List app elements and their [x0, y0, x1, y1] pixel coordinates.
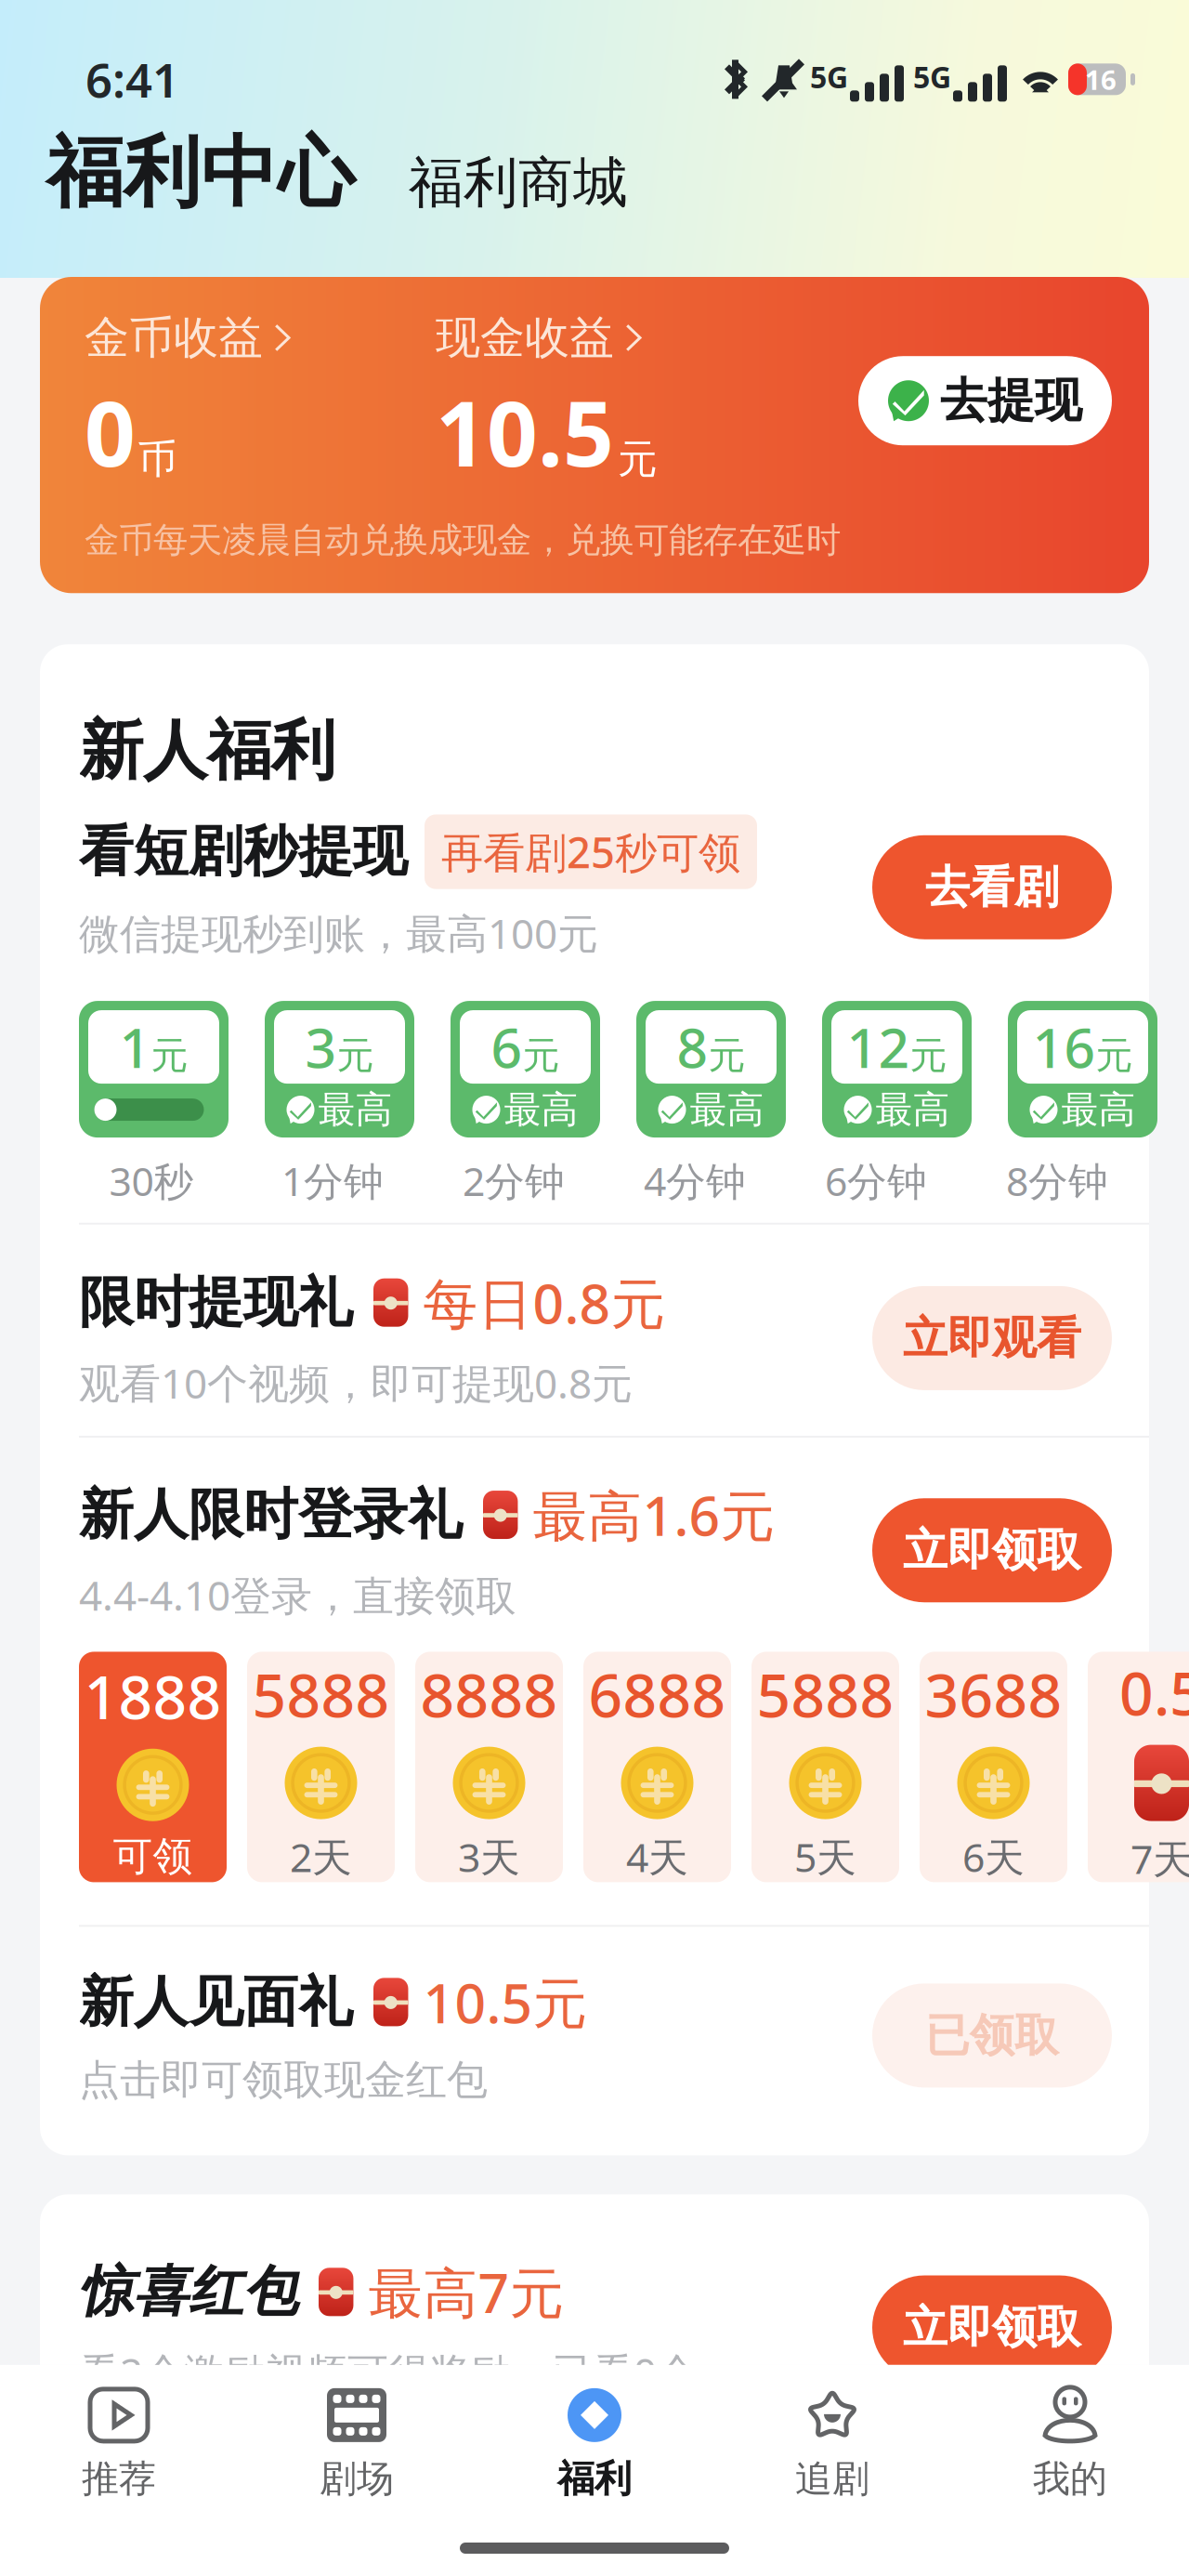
button[interactable]: 立即领取 — [872, 1498, 1112, 1602]
staticText: 最高 — [504, 1087, 578, 1132]
button[interactable]: 现金收益 — [436, 310, 643, 365]
staticText: 0 — [85, 373, 136, 491]
staticText: 已领取 — [925, 2008, 1059, 2063]
staticText: 5天 — [794, 1830, 856, 1883]
staticText: 8分钟 — [1006, 1154, 1108, 1207]
staticText: 6888 — [588, 1655, 726, 1734]
staticText: 看2个激励视频可得奖励，已看0个 — [79, 2345, 698, 2399]
staticText: 5888 — [757, 1655, 894, 1734]
staticText: 3 — [305, 1011, 337, 1083]
staticText: 6天 — [962, 1830, 1025, 1883]
staticText: 1分钟 — [281, 1154, 384, 1207]
staticText: 元 — [523, 1033, 560, 1079]
staticText: 4分钟 — [644, 1154, 746, 1207]
staticText: 8 — [677, 1011, 708, 1083]
staticText: 0.5 — [1119, 1653, 1189, 1732]
staticText: 6:41 — [85, 48, 179, 111]
button[interactable]: 已领取 — [872, 1983, 1112, 2088]
staticText: 6 — [491, 1011, 523, 1083]
staticText: 元 — [337, 1033, 374, 1079]
button[interactable]: 追剧 — [713, 2365, 951, 2509]
button[interactable]: 福利 — [476, 2365, 713, 2509]
staticText: 3天 — [458, 1830, 520, 1883]
staticText: 12 — [847, 1011, 910, 1083]
staticText: 16 — [1085, 61, 1117, 97]
staticText: 可领 — [113, 1832, 193, 1881]
staticText: 10.5 — [436, 373, 614, 491]
staticText: 最高 — [318, 1087, 392, 1132]
button[interactable]: 金币收益 — [85, 310, 292, 365]
staticText: 立即领取 — [903, 1523, 1081, 1578]
staticText: 新人限时登录礼 — [79, 1481, 463, 1548]
staticText: 元 — [151, 1033, 188, 1079]
button[interactable]: 剧场 — [238, 2365, 476, 2509]
staticText: 最高 — [690, 1087, 764, 1132]
staticText: 惊喜红包 — [79, 2258, 298, 2325]
staticText: 5G — [810, 57, 848, 97]
staticText: 立即领取 — [903, 2300, 1081, 2355]
staticText: 福利中心 — [46, 126, 355, 220]
staticText: 8888 — [420, 1655, 558, 1734]
staticText: 现金收益 — [436, 310, 614, 365]
staticText: 点击即可领取现金红包 — [79, 2055, 488, 2105]
staticText: 追剧 — [795, 2456, 869, 2502]
staticText: 最高1.6元 — [533, 1479, 775, 1551]
staticText: 去提现 — [940, 372, 1082, 430]
staticText: 元 — [910, 1033, 947, 1079]
staticText: 我的 — [1033, 2456, 1107, 2502]
staticText: 观看10个视频，即可提现0.8元 — [79, 1356, 633, 1410]
staticText: 1888 — [84, 1657, 222, 1736]
staticText: 7天 — [1130, 1832, 1189, 1885]
staticText: 2分钟 — [463, 1154, 565, 1207]
staticText: 元 — [708, 1033, 745, 1079]
staticText: 10.5元 — [423, 1966, 587, 2038]
staticText: 金币每天凌晨自动兑换成现金，兑换可能存在延时 — [85, 519, 841, 562]
button[interactable]: 去看剧 — [872, 835, 1112, 939]
staticText: 6分钟 — [825, 1154, 927, 1207]
staticText: 再看剧25秒可领 — [441, 824, 740, 880]
staticText: 微信提现秒到账，最高100元 — [79, 906, 598, 960]
button[interactable]: 立即观看 — [872, 1286, 1112, 1390]
staticText: 立即观看 — [903, 1311, 1081, 1366]
button[interactable]: 去提现 — [858, 356, 1112, 445]
staticText: 福利商城 — [409, 149, 628, 216]
staticText: 3688 — [925, 1655, 1062, 1734]
staticText: 16 — [1032, 1011, 1096, 1083]
staticText: 4天 — [626, 1830, 688, 1883]
staticText: 元 — [618, 435, 658, 484]
staticText: 最高7元 — [368, 2256, 564, 2328]
staticText: 福利 — [557, 2456, 632, 2502]
staticText: 4.4-4.10登录，直接领取 — [79, 1568, 516, 1622]
button[interactable]: 立即领取 — [872, 2275, 1112, 2379]
button[interactable]: 推荐 — [0, 2365, 238, 2509]
staticText: 限时提现礼 — [79, 1269, 353, 1336]
staticText: 金币收益 — [85, 310, 263, 365]
staticText: 最高 — [1061, 1087, 1136, 1132]
staticText: 每日0.8元 — [423, 1266, 665, 1339]
staticText: 新人福利 — [79, 711, 335, 790]
staticText: 元 — [1096, 1033, 1133, 1079]
staticText: 推荐 — [82, 2456, 156, 2502]
staticText: 币 — [137, 435, 177, 484]
staticText: 最高 — [875, 1087, 950, 1132]
staticText: 5888 — [252, 1655, 390, 1734]
staticText: 2天 — [290, 1830, 352, 1883]
staticText: 5G — [913, 57, 951, 97]
staticText: 1 — [119, 1011, 151, 1083]
staticText: 新人见面礼 — [79, 1969, 353, 2036]
staticText: 剧场 — [320, 2456, 394, 2502]
button[interactable]: 我的 — [951, 2365, 1189, 2509]
staticText: 去看剧 — [925, 860, 1059, 915]
button[interactable]: 福利商城 — [409, 149, 628, 220]
staticText: 看短剧秒提现 — [79, 818, 408, 885]
staticText: 30秒 — [109, 1154, 194, 1207]
